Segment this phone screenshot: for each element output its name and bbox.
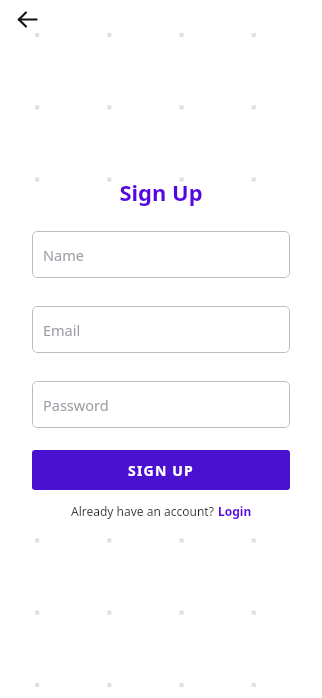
button[interactable]: Login xyxy=(218,503,252,519)
staticText: Already have an account? xyxy=(71,503,218,519)
staticText: Password xyxy=(43,395,109,415)
button[interactable]: Email xyxy=(32,306,290,353)
staticText: SIGN UP xyxy=(128,461,194,480)
staticText: Sign Up xyxy=(0,177,322,207)
staticText: Name xyxy=(43,245,84,265)
button[interactable]: Password xyxy=(32,381,290,428)
button[interactable]: Name xyxy=(32,231,290,278)
button[interactable]: Back xyxy=(8,0,46,38)
button[interactable]: SIGN UP xyxy=(32,450,290,490)
staticText: Login xyxy=(218,503,252,519)
staticText: Email xyxy=(43,320,81,340)
